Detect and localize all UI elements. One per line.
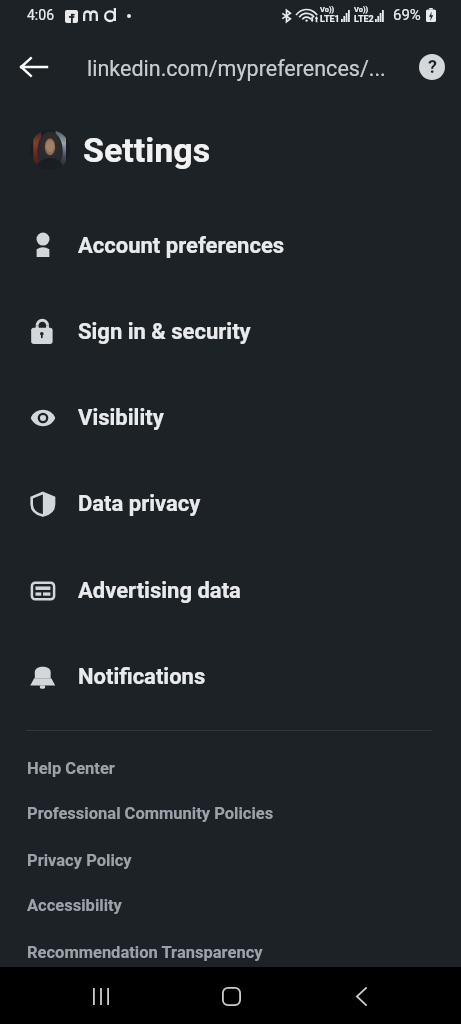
button[interactable]: Help <box>419 54 445 80</box>
button[interactable]: Data privacy <box>0 461 461 547</box>
staticText: Accessibility <box>27 896 122 915</box>
staticText: Recommendation Transparency <box>27 943 263 962</box>
staticText: Sign in & security <box>78 319 251 345</box>
button[interactable]: Recommendation Transparency <box>0 929 461 975</box>
staticText: Settings <box>83 130 211 170</box>
staticText: Vo)) <box>354 5 369 14</box>
staticText: Account preferences <box>78 233 285 259</box>
staticText: Advertising data <box>78 578 241 604</box>
button[interactable]: Privacy Policy <box>0 837 461 883</box>
staticText: ? <box>428 56 437 77</box>
button[interactable]: Accessibility <box>0 882 461 928</box>
button[interactable]: Help Center <box>0 745 461 791</box>
staticText: Data privacy <box>78 491 201 517</box>
button[interactable]: Back <box>339 974 383 1018</box>
staticText: 69% <box>393 6 421 24</box>
button[interactable]: Visibility <box>0 375 461 461</box>
button[interactable]: Account preferences <box>0 203 461 289</box>
staticText: linkedin.com/mypreferences/... <box>87 56 386 81</box>
button[interactable]: Advertising data <box>0 548 461 634</box>
staticText: 4:06 <box>27 7 54 23</box>
button[interactable]: Recent apps <box>79 974 123 1018</box>
staticText: Notifications <box>78 664 206 690</box>
staticText: LTE1 <box>320 14 340 25</box>
button[interactable]: Sign in & security <box>0 289 461 375</box>
staticText: Help Center <box>27 759 115 778</box>
staticText: Privacy Policy <box>27 851 132 870</box>
button[interactable]: Back <box>10 44 56 90</box>
staticText: Visibility <box>78 405 164 431</box>
staticText: LTE2 <box>354 14 374 25</box>
button[interactable]: Home <box>209 974 253 1018</box>
staticText: Vo)) <box>320 5 335 14</box>
staticText: Professional Community Policies <box>27 804 274 823</box>
button[interactable]: Professional Community Policies <box>0 790 461 836</box>
button[interactable]: Notifications <box>0 634 461 720</box>
